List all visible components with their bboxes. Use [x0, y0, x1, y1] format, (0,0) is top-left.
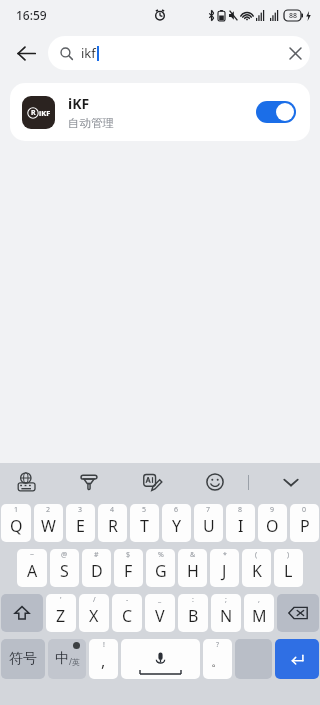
staticText: 自动管理 — [68, 116, 114, 130]
staticText: 0 — [302, 505, 307, 515]
button[interactable]: % — [146, 549, 175, 587]
staticText: # — [94, 550, 99, 560]
staticText: L — [284, 560, 293, 582]
staticText: ? — [216, 640, 220, 650]
staticText: K — [252, 560, 262, 582]
button[interactable]: 8 — [226, 504, 255, 542]
button[interactable]: / — [79, 594, 109, 632]
button[interactable]: : — [178, 594, 208, 632]
button[interactable]: , — [244, 594, 274, 632]
staticText: @ — [61, 550, 68, 560]
button[interactable]: ' — [46, 594, 76, 632]
staticText: , — [258, 595, 260, 605]
button[interactable]: ) — [274, 549, 303, 587]
staticText: U — [203, 515, 215, 537]
button[interactable]: $ — [114, 549, 143, 587]
staticText: % — [158, 550, 164, 560]
button[interactable]: Enter — [275, 639, 319, 679]
staticText: F — [124, 560, 133, 582]
staticText: 9 — [270, 505, 275, 515]
staticText: $ — [126, 550, 131, 560]
button[interactable]: 符号 — [1, 639, 45, 679]
staticText: /英 — [69, 656, 80, 667]
staticText: J — [222, 560, 227, 582]
button[interactable]: Hide keyboard — [278, 469, 304, 495]
staticText: ~ — [30, 550, 35, 560]
staticText: Q — [10, 515, 23, 537]
staticText: X — [89, 605, 99, 627]
staticText: - — [126, 595, 129, 605]
staticText: ' — [60, 595, 62, 605]
button[interactable]: @ — [50, 549, 79, 587]
staticText: G — [155, 560, 167, 582]
staticText: 8 — [238, 505, 243, 515]
button[interactable]: 中 — [48, 639, 86, 679]
button[interactable]: 3 — [66, 504, 95, 542]
button[interactable]: ikf — [48, 36, 310, 70]
staticText: ikf — [81, 44, 96, 62]
button[interactable]: * — [210, 549, 239, 587]
button[interactable]: 7 — [194, 504, 223, 542]
staticText: P — [300, 515, 310, 537]
button[interactable]: 4 — [98, 504, 127, 542]
staticText: / — [93, 595, 96, 605]
button[interactable]: & — [178, 549, 207, 587]
staticText: I — [238, 515, 244, 537]
staticText: 4 — [110, 505, 115, 515]
staticText: B — [188, 605, 199, 627]
staticText: ( — [255, 550, 258, 560]
staticText: E — [76, 515, 85, 537]
staticText: : — [192, 595, 194, 605]
button[interactable]: 6 — [162, 504, 191, 542]
button[interactable]: - — [112, 594, 142, 632]
button[interactable]: ! — [89, 639, 118, 679]
staticText: 88 — [289, 11, 298, 21]
staticText: M — [252, 605, 267, 627]
button[interactable]: _ — [145, 594, 175, 632]
staticText: O — [266, 515, 279, 537]
staticText: 2 — [46, 505, 51, 515]
button[interactable]: 9 — [258, 504, 287, 542]
button[interactable]: 5 — [130, 504, 159, 542]
staticText: 7 — [206, 505, 211, 515]
staticText: R — [108, 515, 118, 537]
button[interactable]: 2 — [34, 504, 63, 542]
button[interactable]: R — [10, 83, 310, 141]
staticText: 5 — [142, 505, 147, 515]
button[interactable]: AI writing — [139, 469, 165, 495]
button[interactable]: # — [82, 549, 111, 587]
button[interactable]: Backspace — [277, 594, 319, 632]
button[interactable]: 1 — [1, 504, 31, 542]
staticText: 1 — [14, 505, 19, 515]
staticText: ; — [225, 595, 227, 605]
staticText: W — [41, 515, 56, 537]
button[interactable]: Toggle auto manage — [256, 101, 296, 123]
staticText: V — [155, 605, 165, 627]
staticText: H — [187, 560, 199, 582]
staticText: * — [223, 550, 227, 560]
button[interactable]: ( — [242, 549, 271, 587]
button[interactable]: Shift — [1, 594, 43, 632]
button[interactable]: Back — [6, 33, 46, 73]
staticText: S — [60, 560, 69, 582]
button[interactable]: Theme — [76, 469, 102, 495]
staticText: 。 — [211, 653, 224, 669]
button[interactable]: Clear — [280, 38, 310, 68]
staticText: 中 — [55, 650, 69, 668]
staticText: 3 — [78, 505, 83, 515]
button[interactable]: Input method — [14, 469, 40, 495]
staticText: C — [122, 605, 133, 627]
staticText: D — [91, 560, 103, 582]
staticText: 6 — [174, 505, 179, 515]
button[interactable]: Space / Voice input — [121, 639, 200, 679]
button[interactable]: Emoji — [202, 469, 228, 495]
button[interactable]: ? — [203, 639, 232, 679]
staticText: Z — [56, 605, 66, 627]
staticText: iKF — [68, 94, 90, 113]
button[interactable]: 0 — [290, 504, 319, 542]
staticText: ) — [287, 550, 290, 560]
button[interactable]: ~ — [17, 549, 47, 587]
staticText: ! — [103, 640, 105, 650]
button[interactable]: ; — [211, 594, 241, 632]
